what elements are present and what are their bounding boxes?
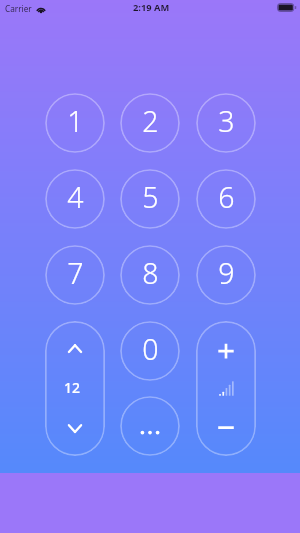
staticText: 9 — [218, 254, 235, 293]
staticText: 1 — [67, 102, 84, 141]
staticText: 4 — [67, 178, 84, 217]
button[interactable]: Decrease — [45, 407, 105, 451]
staticText: 0 — [142, 330, 159, 369]
button[interactable]: 4 — [45, 169, 105, 229]
button[interactable]: 6 — [196, 169, 256, 229]
button[interactable]: More — [120, 396, 180, 456]
staticText: 5 — [142, 178, 159, 217]
button[interactable]: Add — [196, 329, 256, 373]
staticText: 3 — [218, 102, 235, 141]
button[interactable]: Increase — [45, 327, 105, 371]
button[interactable]: 2 — [120, 93, 180, 153]
staticText: Carrier — [5, 3, 32, 14]
staticText: 2:19 AM — [133, 1, 170, 14]
button[interactable]: 1 — [45, 93, 105, 153]
staticText: 7 — [67, 254, 84, 293]
staticText: 8 — [142, 254, 159, 293]
button[interactable]: 3 — [196, 93, 256, 153]
staticText: 12 — [64, 378, 81, 397]
button[interactable]: Subtract — [196, 406, 256, 450]
button[interactable]: 7 — [45, 245, 105, 305]
button[interactable]: 0 — [120, 321, 180, 381]
button[interactable]: 5 — [120, 169, 180, 229]
button[interactable]: 8 — [120, 245, 180, 305]
staticText: 6 — [218, 178, 235, 217]
button[interactable]: 9 — [196, 245, 256, 305]
staticText: 2 — [142, 102, 159, 141]
